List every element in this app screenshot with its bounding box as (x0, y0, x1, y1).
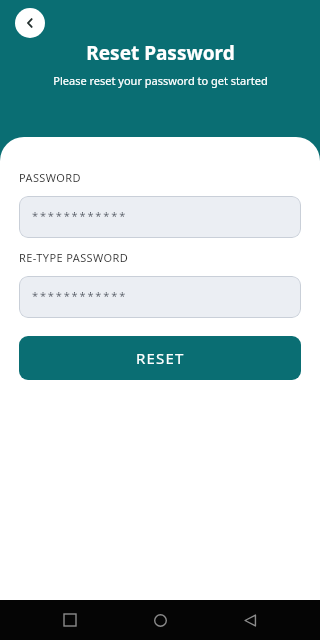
staticText: Reset Password (86, 40, 235, 66)
button[interactable]: Back (230, 600, 270, 640)
button[interactable]: Password input (19, 196, 301, 238)
staticText: PASSWORD (19, 170, 81, 185)
staticText: RESET (136, 348, 185, 368)
button[interactable]: Back (15, 8, 45, 38)
staticText: * * * * * * * * * * * * (32, 208, 125, 223)
staticText: Please reset your password to get starte… (53, 73, 268, 88)
staticText: RE-TYPE PASSWORD (19, 250, 129, 265)
button[interactable]: Recent apps (50, 600, 90, 640)
button[interactable]: RESET (19, 336, 301, 380)
button[interactable]: Home (140, 600, 180, 640)
staticText: * * * * * * * * * * * * (32, 288, 125, 303)
button[interactable]: Password input (19, 276, 301, 318)
